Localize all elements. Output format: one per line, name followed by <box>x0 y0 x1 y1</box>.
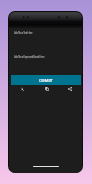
staticText: Add Your Keywords Break Here <box>14 55 45 59</box>
button[interactable]: Select <box>11 84 35 93</box>
button[interactable]: Share <box>58 84 81 93</box>
staticText: Add Your Text Here <box>14 31 33 35</box>
button[interactable]: CONVERT <box>11 75 81 85</box>
staticText: CONVERT <box>39 78 53 82</box>
button[interactable]: Copy <box>35 84 58 93</box>
